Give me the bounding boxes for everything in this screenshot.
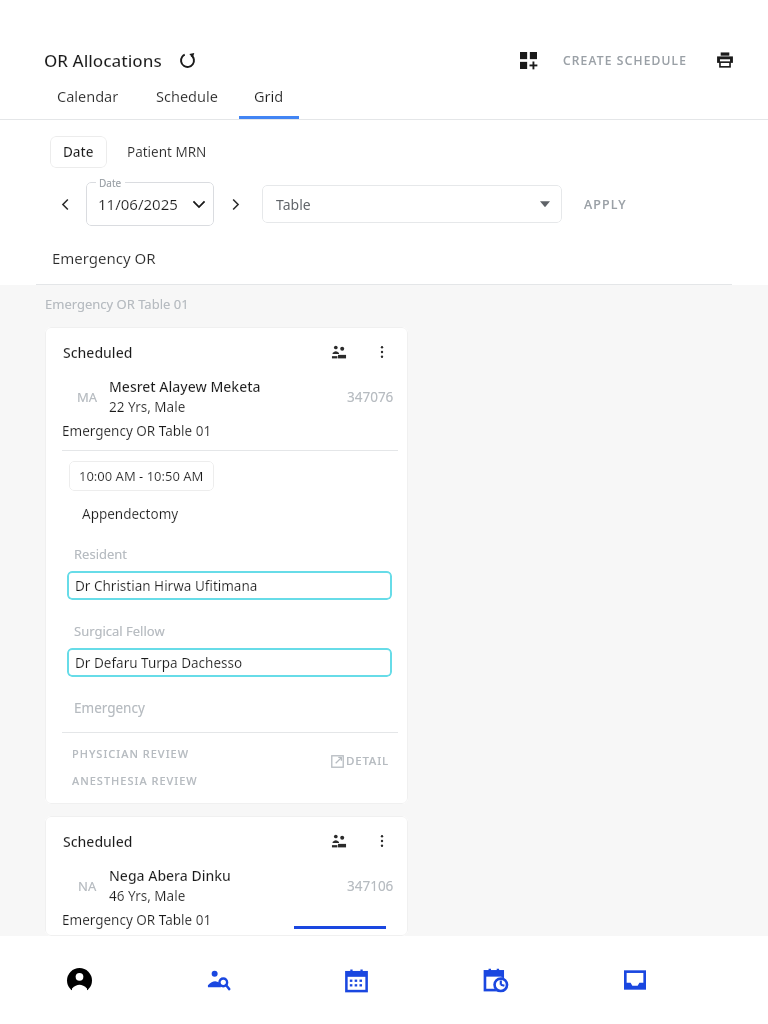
staticText: APPLY [584, 196, 627, 213]
button[interactable]: Inbox [609, 954, 661, 1006]
staticText: Appendectomy [82, 505, 179, 523]
button[interactable]: CREATE SCHEDULE [557, 46, 694, 74]
staticText: Date [63, 143, 94, 161]
staticText: PHYSICIAN REVIEW [72, 746, 190, 761]
button[interactable]: Profile [53, 954, 105, 1006]
staticText: ANESTHESIA REVIEW [72, 773, 198, 788]
button[interactable]: More options [370, 340, 394, 364]
button[interactable]: Calendar [330, 954, 382, 1006]
button[interactable]: Dr Christian Hirwa Ufitimana [67, 571, 392, 600]
button[interactable]: Schedule [470, 954, 522, 1006]
staticText: Scheduled [63, 832, 133, 851]
button[interactable]: Next day [222, 191, 248, 217]
staticText: Dr Christian Hirwa Ufitimana [75, 577, 258, 595]
staticText: 46 Yrs, Male [109, 887, 186, 905]
button[interactable]: APPLY [578, 190, 633, 219]
staticText: Date [99, 176, 122, 190]
staticText: Resident [74, 545, 128, 563]
button[interactable]: Add grid [513, 45, 543, 75]
button[interactable]: Patient search [192, 954, 244, 1006]
staticText: Dr Defaru Turpa Dachesso [75, 654, 243, 672]
staticText: Emergency OR Table 01 [62, 422, 212, 440]
button[interactable]: Schedule [136, 84, 238, 119]
staticText: Schedule [156, 86, 218, 106]
staticText: Mesret Alayew Meketa [109, 377, 261, 396]
staticText: Calendar [57, 86, 119, 106]
staticText: Nega Abera Dinku [109, 866, 231, 885]
staticText: Grid [254, 86, 284, 106]
button[interactable]: Print [710, 45, 740, 75]
button[interactable]: 10:00 AM - 10:50 AM [69, 461, 214, 491]
staticText: MA [77, 388, 98, 406]
staticText: Table [276, 195, 311, 214]
staticText: 347076 [347, 388, 394, 406]
button[interactable]: Calendar [40, 84, 136, 119]
staticText: OR Allocations [44, 49, 162, 72]
button[interactable]: Team [326, 339, 352, 365]
button[interactable]: DETAIL [327, 749, 394, 773]
staticText: 10:00 AM - 10:50 AM [79, 467, 204, 485]
button[interactable]: Grid [238, 84, 300, 119]
button[interactable]: Team [326, 828, 352, 854]
button[interactable]: Patient MRN [119, 136, 215, 168]
staticText: Emergency OR Table 01 [45, 295, 189, 313]
button[interactable]: Dr Defaru Turpa Dachesso [67, 648, 392, 677]
staticText: 347106 [347, 877, 394, 895]
staticText: Emergency OR [52, 248, 156, 268]
button[interactable]: Date [50, 136, 107, 168]
staticText: 22 Yrs, Male [109, 398, 186, 416]
button[interactable]: Previous day [52, 191, 78, 217]
staticText: Scheduled [63, 343, 133, 362]
button[interactable]: Scheduled [45, 327, 408, 804]
button[interactable]: More options [370, 829, 394, 853]
button[interactable]: 11/06/2025 [86, 182, 214, 226]
staticText: Surgical Fellow [74, 622, 165, 640]
staticText: Emergency [74, 699, 145, 717]
button[interactable]: Table [262, 185, 562, 223]
staticText: Patient MRN [127, 143, 207, 161]
button[interactable]: Scheduled [45, 816, 408, 936]
staticText: NA [78, 877, 97, 895]
staticText: DETAIL [346, 753, 390, 769]
staticText: Emergency OR Table 01 [62, 911, 212, 929]
staticText: 11/06/2025 [98, 194, 178, 214]
staticText: CREATE SCHEDULE [563, 52, 688, 68]
button[interactable]: Refresh [174, 47, 200, 73]
